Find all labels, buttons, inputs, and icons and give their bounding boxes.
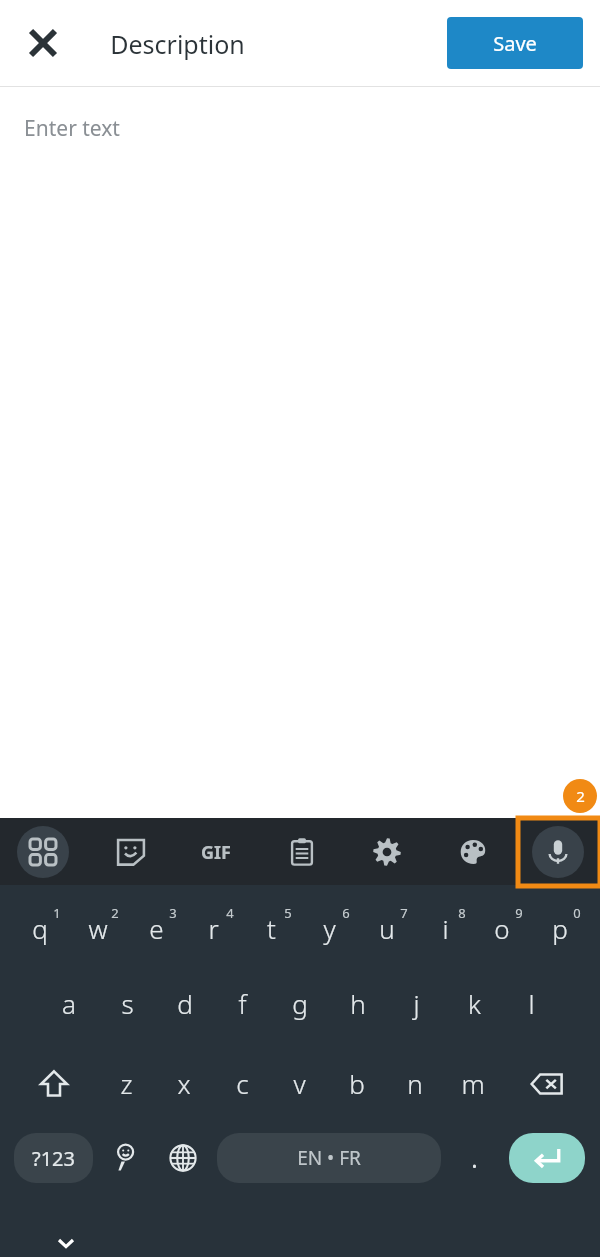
staticText: 4 xyxy=(226,904,234,922)
button[interactable]: a xyxy=(41,977,97,1029)
button[interactable]: Enter xyxy=(509,1133,585,1183)
button[interactable]: d xyxy=(157,977,213,1029)
button[interactable]: u xyxy=(359,902,415,954)
button[interactable]: Apps xyxy=(17,826,69,878)
button[interactable]: q xyxy=(12,902,68,954)
staticText: h xyxy=(350,986,366,1021)
staticText: a xyxy=(62,986,76,1021)
staticText: Save xyxy=(493,30,537,57)
staticText: k xyxy=(468,986,481,1021)
staticText: f xyxy=(238,986,247,1021)
button[interactable]: Hide keyboard xyxy=(46,1223,86,1257)
staticText: p xyxy=(552,911,568,946)
button[interactable]: f xyxy=(214,977,270,1029)
button[interactable]: r xyxy=(185,902,241,954)
staticText: Enter text xyxy=(24,114,120,143)
staticText: GIF xyxy=(201,840,231,865)
staticText: ?123 xyxy=(32,1145,75,1172)
staticText: m xyxy=(461,1066,485,1101)
staticText: b xyxy=(349,1066,365,1101)
button[interactable]: Change language xyxy=(159,1133,207,1183)
staticText: x xyxy=(177,1066,191,1101)
button[interactable]: Emoji xyxy=(101,1133,149,1183)
button[interactable]: i xyxy=(417,902,473,954)
button[interactable]: c xyxy=(214,1057,270,1109)
staticText: 9 xyxy=(515,904,523,922)
staticText: l xyxy=(528,986,535,1021)
staticText: v xyxy=(293,1066,306,1101)
button[interactable]: GIF xyxy=(190,826,242,878)
button[interactable]: Settings xyxy=(361,826,413,878)
staticText: i xyxy=(442,911,449,946)
button[interactable]: z xyxy=(98,1057,154,1109)
button[interactable]: e xyxy=(128,902,184,954)
button[interactable]: y xyxy=(301,902,357,954)
button[interactable]: x xyxy=(156,1057,212,1109)
staticText: g xyxy=(292,986,308,1021)
button[interactable]: p xyxy=(532,902,588,954)
button[interactable]: g xyxy=(272,977,328,1029)
staticText: 6 xyxy=(342,904,350,922)
button[interactable]: Shift xyxy=(28,1058,80,1110)
staticText: s xyxy=(121,986,134,1021)
button[interactable]: EN • FR xyxy=(217,1133,441,1183)
staticText: q xyxy=(32,911,48,946)
button[interactable]: Theme xyxy=(447,826,499,878)
button[interactable]: ?123 xyxy=(14,1133,93,1183)
staticText: d xyxy=(177,986,193,1021)
button[interactable]: k xyxy=(446,977,502,1029)
button[interactable]: m xyxy=(445,1057,501,1109)
staticText: z xyxy=(120,1066,133,1101)
staticText: n xyxy=(407,1066,423,1101)
button[interactable]: Clipboard xyxy=(276,826,328,878)
staticText: w xyxy=(88,911,108,946)
staticText: u xyxy=(379,911,395,946)
button[interactable]: t xyxy=(243,902,299,954)
staticText: t xyxy=(267,911,276,946)
staticText: 5 xyxy=(284,904,292,922)
staticText: 0 xyxy=(573,904,581,922)
staticText: 7 xyxy=(400,904,408,922)
button[interactable]: Stickers xyxy=(105,826,157,878)
staticText: EN • FR xyxy=(297,1145,361,1171)
button[interactable]: v xyxy=(271,1057,327,1109)
staticText: 8 xyxy=(458,904,466,922)
button[interactable]: Save xyxy=(447,17,583,69)
button[interactable]: l xyxy=(503,977,559,1029)
staticText: e xyxy=(149,911,164,946)
staticText: o xyxy=(494,911,510,946)
button[interactable]: b xyxy=(329,1057,385,1109)
staticText: 3 xyxy=(169,904,177,922)
staticText: Description xyxy=(110,27,245,61)
button[interactable]: Backspace xyxy=(521,1058,573,1110)
staticText: 2 xyxy=(111,904,119,922)
button[interactable]: j xyxy=(388,977,444,1029)
staticText: r xyxy=(208,911,219,946)
staticText: 1 xyxy=(53,904,61,922)
staticText: y xyxy=(323,911,336,946)
button[interactable]: h xyxy=(330,977,386,1029)
button[interactable]: Voice input xyxy=(532,826,584,878)
button[interactable]: w xyxy=(70,902,126,954)
button[interactable]: o xyxy=(474,902,530,954)
button[interactable]: s xyxy=(99,977,155,1029)
button[interactable]: Close xyxy=(14,14,72,72)
staticText: c xyxy=(236,1066,249,1101)
staticText: . xyxy=(471,1142,478,1175)
button[interactable]: . xyxy=(452,1133,496,1183)
staticText: j xyxy=(413,986,420,1021)
button[interactable]: n xyxy=(387,1057,443,1109)
staticText: 2 xyxy=(576,786,585,806)
